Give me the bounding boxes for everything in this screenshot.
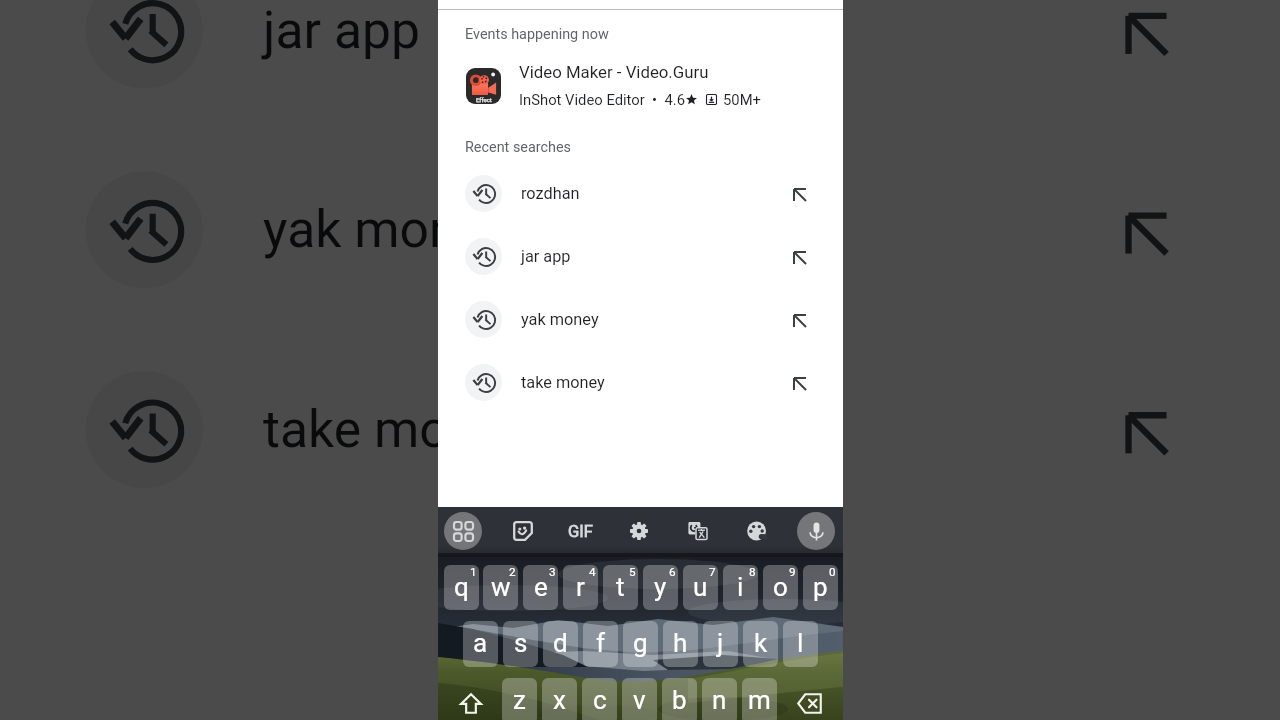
staticText: Recent searches [465,139,572,156]
button[interactable]: h [663,621,698,667]
staticText: 50M+ [723,91,761,108]
button[interactable]: n [702,678,737,720]
staticText: 0 [829,565,836,579]
staticText: l [797,628,804,658]
button[interactable]: Shift [450,678,494,720]
staticText: p [813,572,828,602]
button[interactable]: yak money [438,297,843,341]
button[interactable]: f [583,621,618,667]
button[interactable]: take money [438,360,843,404]
staticText: a [473,628,488,658]
staticText: 5 [629,565,636,579]
button[interactable]: q [444,565,479,610]
button[interactable]: Keyboard tool [444,512,482,550]
staticText: take money [263,399,529,460]
staticText: d [553,628,568,658]
button[interactable]: Keyboard tool [505,513,541,549]
staticText: f [596,628,606,658]
staticText: i [737,572,744,602]
button[interactable]: jar app [0,0,1280,98]
button[interactable]: l [783,621,818,667]
button[interactable]: a [463,621,498,667]
staticText: 7 [709,565,716,579]
staticText: e [534,572,548,602]
button[interactable]: Insert take money [1106,393,1189,475]
staticText: 9 [789,565,796,579]
staticText: 3 [549,565,556,579]
staticText: w [491,572,511,602]
button[interactable]: Keyboard tool [680,513,716,549]
staticText: t [616,572,625,602]
staticText: 1 [470,565,477,579]
staticText: 2 [509,565,516,579]
button[interactable]: Insert yak money [1106,193,1189,276]
button[interactable]: take money [0,358,1280,498]
button[interactable]: t [603,565,638,610]
staticText: Video Maker - Video.Guru [519,62,709,82]
button[interactable]: Insert jar app [1106,0,1189,76]
staticText: GIF [568,522,593,541]
button[interactable]: d [543,621,578,667]
staticText: h [673,628,688,658]
staticText: Events happening now [465,26,609,43]
button[interactable]: rozdhan [438,171,843,215]
staticText: jar app [263,0,422,60]
button[interactable]: c [582,678,617,720]
button[interactable]: p [803,565,838,610]
button[interactable]: Insert take money [787,371,813,397]
button[interactable]: m [742,678,777,720]
staticText: y [654,572,667,602]
button[interactable]: Keyboard tool [563,513,599,549]
button[interactable]: g [623,621,658,667]
staticText: u [693,572,708,602]
button[interactable]: x [542,678,577,720]
staticText: take money [521,373,605,392]
button[interactable]: Backspace [787,678,831,720]
staticText: Effect [476,96,492,103]
staticText: x [553,685,566,715]
button[interactable]: u [683,565,718,610]
button[interactable]: o [763,565,798,610]
button[interactable]: Insert jar app [787,245,813,271]
button[interactable]: Insert yak money [787,308,813,334]
staticText: c [593,685,607,715]
staticText: r [576,572,585,602]
staticText: 6 [669,565,676,579]
button[interactable]: z [502,678,537,720]
staticText: n [712,685,727,715]
staticText: z [513,685,526,715]
staticText: 4 [589,565,596,579]
button[interactable]: b [662,678,697,720]
staticText: s [514,628,528,658]
staticText: o [773,572,788,602]
button[interactable]: w [483,565,518,610]
button[interactable]: GIF [561,512,599,550]
staticText: rozdhan [521,184,580,203]
button[interactable]: Keyboard tool [797,512,835,550]
button[interactable]: s [503,621,538,667]
button[interactable]: e [523,565,558,610]
staticText: InShot Video Editor • 4.6 [519,91,685,108]
button[interactable]: i [723,565,758,610]
button[interactable]: Keyboard tool [739,513,775,549]
button[interactable]: r [563,565,598,610]
button[interactable]: y [643,565,678,610]
staticText: jar app [521,247,571,266]
staticText: q [454,572,469,602]
staticText: j [717,628,724,658]
staticText: m [748,685,771,715]
staticText: v [633,685,646,715]
button[interactable]: yak money [0,158,1280,298]
button[interactable]: Keyboard tool [621,513,657,549]
button[interactable]: v [622,678,657,720]
button[interactable]: k [743,621,778,667]
button[interactable]: Effect [438,60,843,112]
button[interactable]: j [703,621,738,667]
button[interactable]: jar app [438,234,843,278]
staticText: yak money [263,200,510,260]
staticText: b [672,685,687,715]
staticText: 8 [749,565,756,579]
staticText: g [633,628,648,658]
staticText: yak money [521,310,599,329]
button[interactable]: Insert rozdhan [787,182,813,208]
